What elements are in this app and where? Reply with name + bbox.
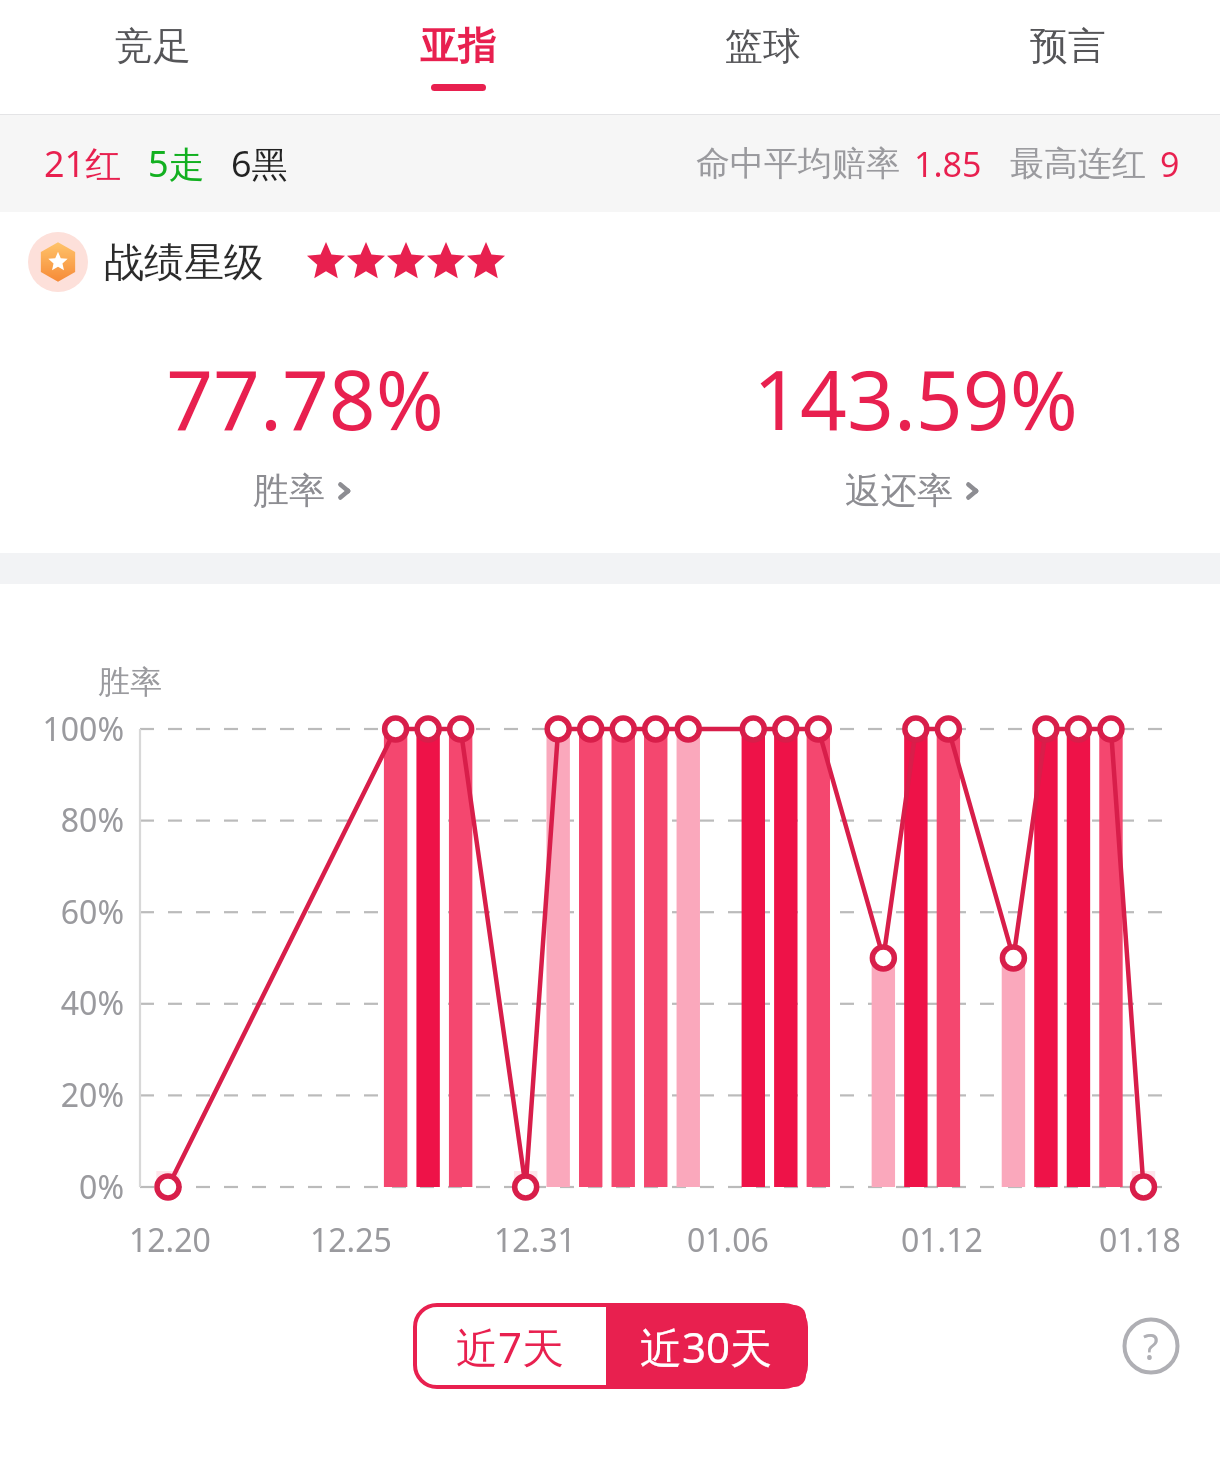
staticText: 40% (60, 981, 124, 1025)
staticText: 12.20 (129, 1218, 211, 1262)
button[interactable]: 帮助 (1122, 1317, 1180, 1375)
button[interactable]: 篮球 (610, 0, 915, 112)
staticText: 胜率 (253, 468, 325, 513)
staticText: 命中平均赔率 (696, 142, 900, 185)
staticText: 胜率 (98, 662, 162, 702)
staticText: 预言 (1030, 22, 1106, 70)
staticText: 1.85 (914, 141, 982, 187)
staticText: 亚指 (420, 22, 496, 70)
button[interactable]: 143.59% (610, 312, 1220, 542)
staticText: 竞足 (115, 22, 191, 70)
button[interactable]: 近30天 (606, 1305, 806, 1387)
staticText: 01.12 (901, 1218, 983, 1262)
staticText: 80% (60, 798, 124, 842)
staticText: ? (1143, 1322, 1159, 1371)
staticText: 返还率 (845, 468, 953, 513)
staticText: 5走 (148, 139, 205, 188)
staticText: 20% (60, 1073, 124, 1117)
staticText: 01.18 (1099, 1218, 1181, 1262)
button[interactable]: 亚指 (305, 0, 610, 112)
staticText: 6黑 (231, 139, 288, 188)
staticText: 最高连红 (1010, 142, 1146, 185)
staticText: 60% (60, 890, 124, 934)
staticText: 0% (79, 1165, 124, 1209)
staticText: 77.78% (166, 342, 444, 454)
staticText: 01.06 (687, 1218, 769, 1262)
staticText: 12.25 (310, 1218, 392, 1262)
staticText: 9 (1160, 141, 1180, 187)
staticText: 100% (42, 707, 124, 751)
button[interactable]: 预言 (915, 0, 1220, 112)
staticText: 143.59% (753, 342, 1078, 454)
staticText: 战绩星级 (104, 237, 264, 287)
button[interactable]: 77.78% (0, 312, 610, 542)
button[interactable]: 近7天 (415, 1305, 606, 1387)
staticText: 近7天 (456, 1318, 565, 1375)
staticText: 12.31 (494, 1218, 576, 1262)
staticText: 近30天 (640, 1318, 773, 1375)
button[interactable]: 竞足 (0, 0, 305, 112)
staticText: 篮球 (725, 22, 801, 70)
staticText: 21红 (44, 139, 122, 188)
